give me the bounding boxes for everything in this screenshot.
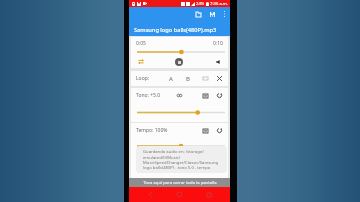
button[interactable]: Recents <box>201 187 216 202</box>
button[interactable]: More options <box>218 7 230 21</box>
button[interactable]: Loop point B <box>182 71 194 86</box>
staticText: 24% <box>196 1 205 7</box>
button[interactable]: Keyboard <box>199 88 211 103</box>
staticText: B <box>186 75 190 83</box>
button[interactable]: Back <box>143 187 158 202</box>
staticText: Toca aquí para cerrar toda la pantalla <box>143 180 217 186</box>
button[interactable]: Keyboard <box>199 123 211 138</box>
button[interactable]: Clear loop <box>213 71 225 86</box>
staticText: 0:05 <box>136 40 146 47</box>
staticText: Tono: +5.0 <box>136 92 161 99</box>
button[interactable]: Save <box>206 7 219 21</box>
button[interactable]: Toca aquí para cerrar toda la pantalla <box>129 178 230 187</box>
button[interactable]: Link tone <box>173 88 185 103</box>
staticText: Samsung logo balls(480P).mp3 <box>134 26 217 34</box>
staticText: Tempo: 100% <box>136 127 168 134</box>
button[interactable]: Home <box>172 187 187 202</box>
button[interactable]: Open folder <box>192 7 205 21</box>
button[interactable]: Loop point A <box>165 71 177 86</box>
staticText: 7:36 a.m. <box>210 1 228 7</box>
button[interactable]: Volume <box>212 55 225 68</box>
button[interactable]: Reset tempo <box>213 123 225 138</box>
staticText: Guardando audio en: /storage/emulated/0/… <box>143 149 220 170</box>
staticText: Loop: <box>136 75 150 82</box>
button[interactable]: Pause <box>175 58 183 66</box>
button[interactable]: Loop region <box>199 71 211 86</box>
staticText: A <box>169 75 173 83</box>
staticText: 0:10 <box>213 40 223 47</box>
button[interactable]: Reset tone <box>213 88 225 103</box>
button[interactable]: Repeat <box>134 55 147 68</box>
